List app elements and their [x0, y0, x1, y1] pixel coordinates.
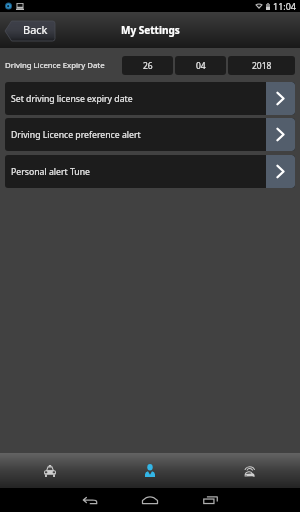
button[interactable]: Open — [266, 118, 295, 151]
button[interactable]: 04 — [175, 56, 226, 75]
button[interactable]: Connected car — [200, 453, 300, 488]
button[interactable]: Personal alert Tune — [5, 155, 295, 188]
staticText: 26 — [143, 60, 153, 72]
button[interactable]: Open — [266, 82, 295, 115]
staticText: 2018 — [252, 60, 272, 72]
button[interactable]: Recents — [180, 488, 240, 512]
button[interactable]: 2018 — [228, 56, 295, 75]
staticText: My Settings — [121, 23, 180, 37]
staticText: Driving Licence preference alert — [11, 129, 266, 141]
staticText: Set driving license expiry date — [11, 93, 266, 105]
button[interactable]: Driving Licence preference alert — [5, 118, 295, 151]
staticText: 11:04 — [273, 0, 297, 12]
button[interactable]: Back — [5, 21, 55, 41]
button[interactable]: Profile — [100, 453, 200, 488]
button[interactable]: Open — [266, 155, 295, 188]
button[interactable]: 26 — [122, 56, 173, 75]
button[interactable]: Back — [60, 488, 120, 512]
staticText: Personal alert Tune — [11, 166, 266, 178]
staticText: Back — [23, 22, 48, 37]
button[interactable]: Set driving license expiry date — [5, 82, 295, 115]
staticText: Driving Licence Expiry Date — [5, 60, 105, 71]
button[interactable]: Taxi — [0, 453, 100, 488]
staticText: 04 — [196, 60, 206, 72]
button[interactable]: Home — [120, 488, 180, 512]
